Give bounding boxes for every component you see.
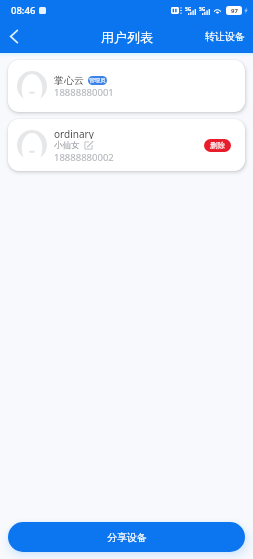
button[interactable]: Back: [0, 20, 28, 53]
button[interactable]: 分享设备: [8, 522, 245, 552]
staticText: 管理员: [89, 77, 106, 84]
staticText: ordinary: [54, 127, 94, 139]
staticText: 删除: [210, 141, 225, 150]
staticText: 掌心云: [54, 74, 84, 86]
button[interactable]: 转让设备: [197, 20, 253, 53]
staticText: 5G: [199, 6, 206, 13]
staticText: 18888880002: [54, 151, 114, 163]
other: Edit: [84, 141, 93, 150]
staticText: 小仙女: [54, 140, 80, 151]
staticText: 18888880001: [54, 86, 114, 98]
button[interactable]: ordinary: [8, 119, 245, 171]
staticText: 97: [231, 7, 238, 15]
staticText: 5G: [185, 6, 192, 13]
staticText: 分享设备: [107, 531, 147, 544]
staticText: 08:46: [11, 4, 36, 17]
button[interactable]: 掌心云: [8, 60, 245, 112]
button[interactable]: 删除: [204, 139, 231, 152]
staticText: 用户列表: [101, 29, 153, 45]
staticText: 转让设备: [205, 30, 245, 43]
